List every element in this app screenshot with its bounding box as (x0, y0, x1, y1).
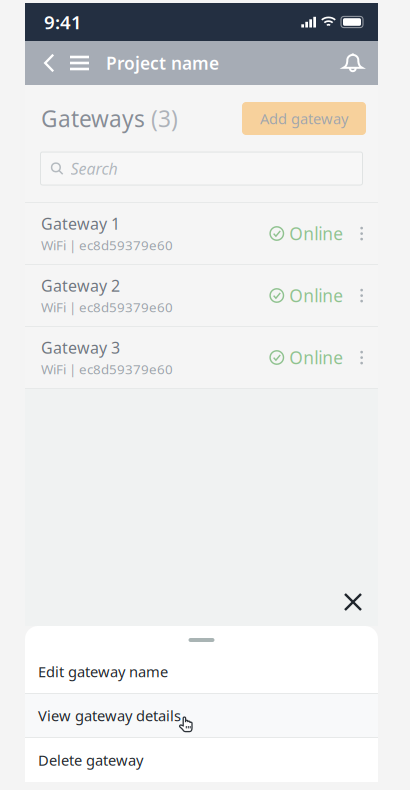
staticText: Online (289, 222, 343, 245)
staticText: Gateway 2 (41, 275, 120, 296)
staticText: Gateways (41, 103, 145, 133)
button[interactable]: Add gateway (242, 102, 366, 135)
button[interactable]: Notifications (335, 41, 371, 85)
staticText: WiFi | ec8d59379e60 (41, 236, 173, 254)
button[interactable]: View gateway details (25, 694, 378, 738)
button[interactable]: Gateway 2 (25, 264, 378, 326)
staticText: Project name (106, 51, 219, 74)
staticText: Edit gateway name (38, 662, 168, 681)
staticText: 9:41 (44, 10, 82, 34)
button[interactable]: Menu (63, 41, 96, 85)
staticText: Gateway 3 (41, 337, 120, 358)
staticText: View gateway details (38, 706, 181, 725)
staticText: Add gateway (260, 109, 348, 128)
button[interactable]: Close (333, 582, 373, 622)
staticText: (3) (151, 103, 178, 133)
staticText: Online (289, 346, 343, 369)
button[interactable]: Gateway 1 (25, 202, 378, 264)
staticText: Online (289, 284, 343, 307)
staticText: Delete gateway (38, 750, 143, 770)
staticText: WiFi | ec8d59379e60 (41, 360, 173, 378)
staticText: WiFi | ec8d59379e60 (41, 298, 173, 316)
button[interactable]: Back (35, 41, 63, 85)
button[interactable]: Edit gateway name (25, 650, 378, 694)
button[interactable]: Gateway 3 (25, 326, 378, 388)
staticText: Gateway 1 (41, 213, 120, 234)
button[interactable]: Delete gateway (25, 738, 378, 782)
staticText: Search (70, 158, 117, 179)
